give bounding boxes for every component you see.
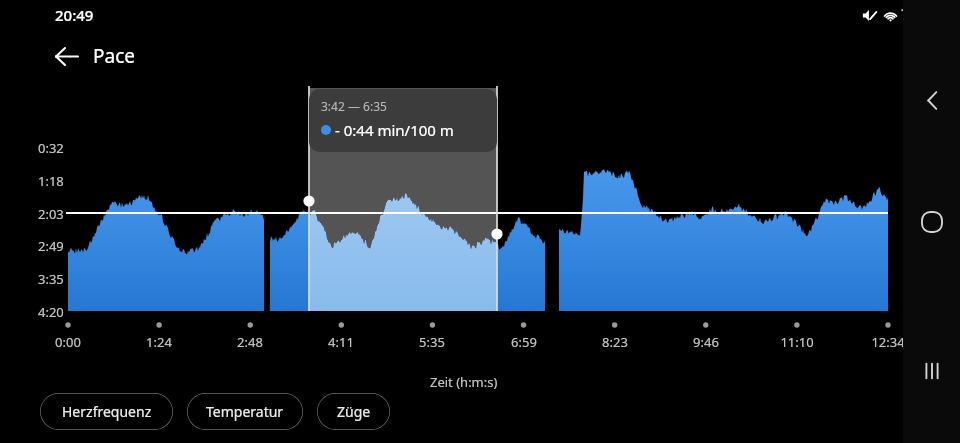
staticText: 1:24 — [146, 333, 172, 351]
staticText: 2:48 — [237, 333, 263, 351]
staticText: Züge — [337, 402, 371, 421]
button[interactable]: Züge — [317, 393, 390, 430]
staticText: 0:32 — [38, 139, 64, 157]
staticText: 20:49 — [55, 5, 94, 25]
staticText: 0:00 — [55, 333, 81, 351]
staticText: 2:03 — [38, 205, 64, 223]
staticText: 5:35 — [419, 333, 445, 351]
staticText: 11:10 — [780, 333, 814, 351]
staticText: 12:34 — [871, 333, 905, 351]
button[interactable]: Back — [44, 34, 88, 78]
staticText: 9:46 — [693, 333, 719, 351]
button[interactable]: Back — [908, 76, 956, 124]
staticText: Pace — [93, 43, 135, 69]
button[interactable]: Temperatur — [187, 393, 303, 430]
button[interactable]: Recents — [908, 347, 956, 395]
staticText: 4:11 — [328, 333, 354, 351]
staticText: 6:59 — [511, 333, 537, 351]
button[interactable]: Herzfrequenz — [40, 393, 173, 430]
staticText: Herzfrequenz — [62, 402, 152, 421]
staticText: 3:42 — 6:35 — [321, 98, 387, 114]
staticText: Temperatur — [206, 402, 284, 421]
staticText: 2:49 — [38, 237, 64, 255]
button[interactable]: Home — [908, 198, 956, 246]
staticText: 1:18 — [38, 172, 64, 190]
staticText: 8:23 — [602, 333, 628, 351]
staticText: 3:35 — [38, 270, 64, 288]
staticText: Zeit (h:m:s) — [430, 373, 498, 391]
staticText: - 0:44 min/100 m — [335, 120, 454, 140]
staticText: 4:20 — [38, 303, 64, 321]
